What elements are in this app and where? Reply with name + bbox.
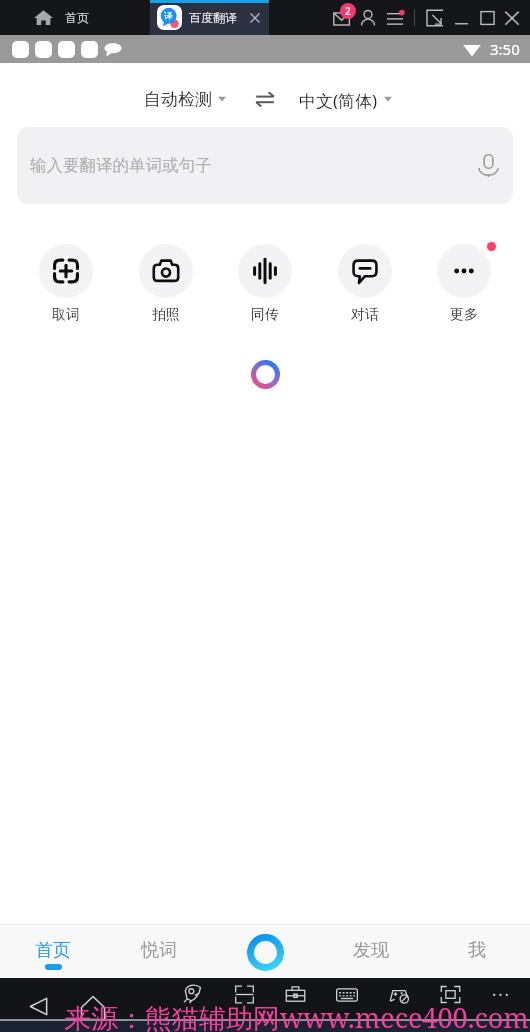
staticText: 对话 [351, 306, 379, 324]
button[interactable]: Maximize [480, 10, 496, 26]
button[interactable]: 取词 [39, 244, 93, 324]
button[interactable]: Messages [333, 9, 353, 29]
button[interactable]: 输入要翻译的单词或句子 [17, 127, 513, 204]
staticText: 取词 [52, 306, 80, 324]
staticText: 3:50 [490, 39, 520, 59]
staticText: 拍照 [152, 306, 180, 324]
button[interactable]: 中文(简体) [297, 87, 394, 111]
staticText: 中文(简体) [299, 89, 378, 109]
staticText: 2 [345, 4, 351, 18]
button[interactable]: Fullscreen [440, 984, 461, 1005]
staticText: 来源：熊猫辅助网www.mece400.com [64, 999, 529, 1032]
button[interactable]: 同传 [238, 244, 292, 324]
button[interactable]: More [490, 984, 511, 1005]
button[interactable]: Close [504, 10, 520, 26]
button[interactable]: Tools [285, 984, 306, 1005]
staticText: 译 [164, 10, 173, 21]
staticText: 首页 [65, 10, 89, 25]
button[interactable]: 首页 [0, 925, 106, 978]
button[interactable]: Voice input [477, 154, 500, 177]
button[interactable]: Account [359, 9, 377, 27]
button[interactable]: Home [81, 996, 105, 1020]
button[interactable]: Close tab [247, 10, 263, 26]
button[interactable]: 自动检测 [142, 87, 228, 111]
button[interactable]: 首页 [34, 0, 89, 35]
button[interactable]: 拍照 [139, 244, 193, 324]
button[interactable]: Translate [243, 930, 287, 974]
button[interactable]: 悦词 [106, 925, 212, 978]
staticText: 更多 [450, 306, 478, 324]
button[interactable]: 对话 [338, 244, 392, 324]
button[interactable]: Screenshot [234, 984, 255, 1005]
button[interactable]: Minimize [454, 10, 470, 26]
button[interactable]: 发现 [318, 925, 424, 978]
staticText: 输入要翻译的单词或句子 [30, 155, 212, 176]
button[interactable]: 译 [150, 0, 269, 35]
staticText: 同传 [251, 306, 279, 324]
button[interactable]: Swap languages [255, 89, 275, 109]
button[interactable]: Menu [386, 9, 404, 27]
staticText: 发现 [353, 939, 389, 962]
staticText: 首页 [35, 939, 71, 962]
button[interactable]: 更多 [437, 244, 491, 324]
button[interactable]: Restore [427, 10, 443, 26]
staticText: 我 [468, 939, 486, 962]
button[interactable]: Keyboard [336, 984, 358, 1006]
button[interactable]: Gamepad [388, 984, 410, 1006]
button[interactable]: Boost [183, 984, 202, 1003]
staticText: 悦词 [141, 939, 177, 962]
staticText: 百度翻译 [189, 10, 237, 25]
button[interactable]: 我 [424, 925, 530, 978]
button[interactable]: Back [30, 998, 47, 1015]
staticText: 自动检测 [144, 89, 212, 109]
